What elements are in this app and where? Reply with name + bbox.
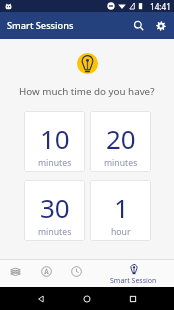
- button[interactable]: Library: [0, 260, 31, 287]
- staticText: 20: [106, 121, 136, 156]
- staticText: 10: [40, 121, 70, 156]
- button[interactable]: Search: [128, 15, 150, 37]
- other: Back: [36, 294, 46, 304]
- staticText: 14:41: [150, 1, 171, 12]
- other: Home: [82, 294, 92, 304]
- staticText: minutes: [104, 157, 138, 169]
- staticText: hour: [111, 226, 131, 238]
- button[interactable]: 30: [24, 180, 85, 241]
- staticText: Smart Sessions: [7, 19, 74, 32]
- staticText: Smart Session: [110, 276, 157, 286]
- staticText: 30: [40, 190, 70, 225]
- button[interactable]: Smart Session: [92, 260, 174, 287]
- button[interactable]: Settings: [150, 15, 172, 37]
- staticText: minutes: [38, 226, 72, 238]
- staticText: minutes: [38, 157, 72, 169]
- button[interactable]: 1: [90, 180, 151, 241]
- other: Recents: [128, 294, 138, 304]
- staticText: How much time do you have?: [19, 85, 155, 98]
- button[interactable]: 10: [24, 111, 85, 172]
- button[interactable]: Explore: [31, 260, 61, 287]
- button[interactable]: 20: [90, 111, 151, 172]
- button[interactable]: Timer: [61, 260, 92, 287]
- staticText: 1: [114, 190, 129, 225]
